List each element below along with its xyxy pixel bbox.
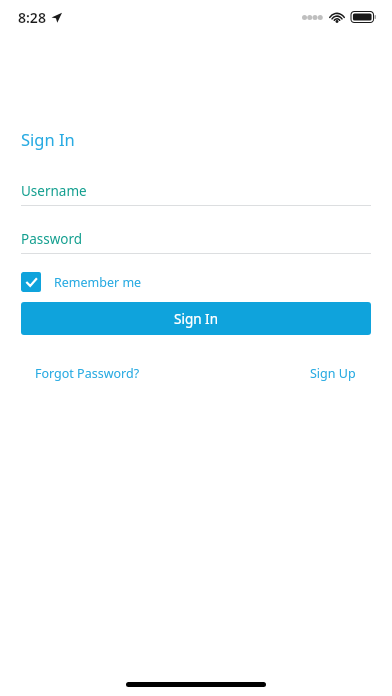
staticText: Sign In	[21, 128, 75, 150]
button[interactable]: Sign Up	[306, 362, 360, 385]
button[interactable]: Password	[21, 230, 371, 254]
staticText: 8:28	[18, 8, 46, 27]
staticText: Username	[21, 182, 87, 200]
button[interactable]: Forgot Password?	[31, 362, 144, 385]
button[interactable]: Sign In	[21, 302, 371, 335]
button[interactable]: Username	[21, 182, 371, 206]
staticText: Remember me	[54, 274, 142, 291]
staticText: Password	[21, 230, 83, 248]
button[interactable]: Remember me	[21, 272, 148, 292]
staticText: Sign In	[174, 310, 218, 328]
staticText: Sign Up	[310, 365, 356, 382]
staticText: Forgot Password?	[35, 365, 140, 382]
